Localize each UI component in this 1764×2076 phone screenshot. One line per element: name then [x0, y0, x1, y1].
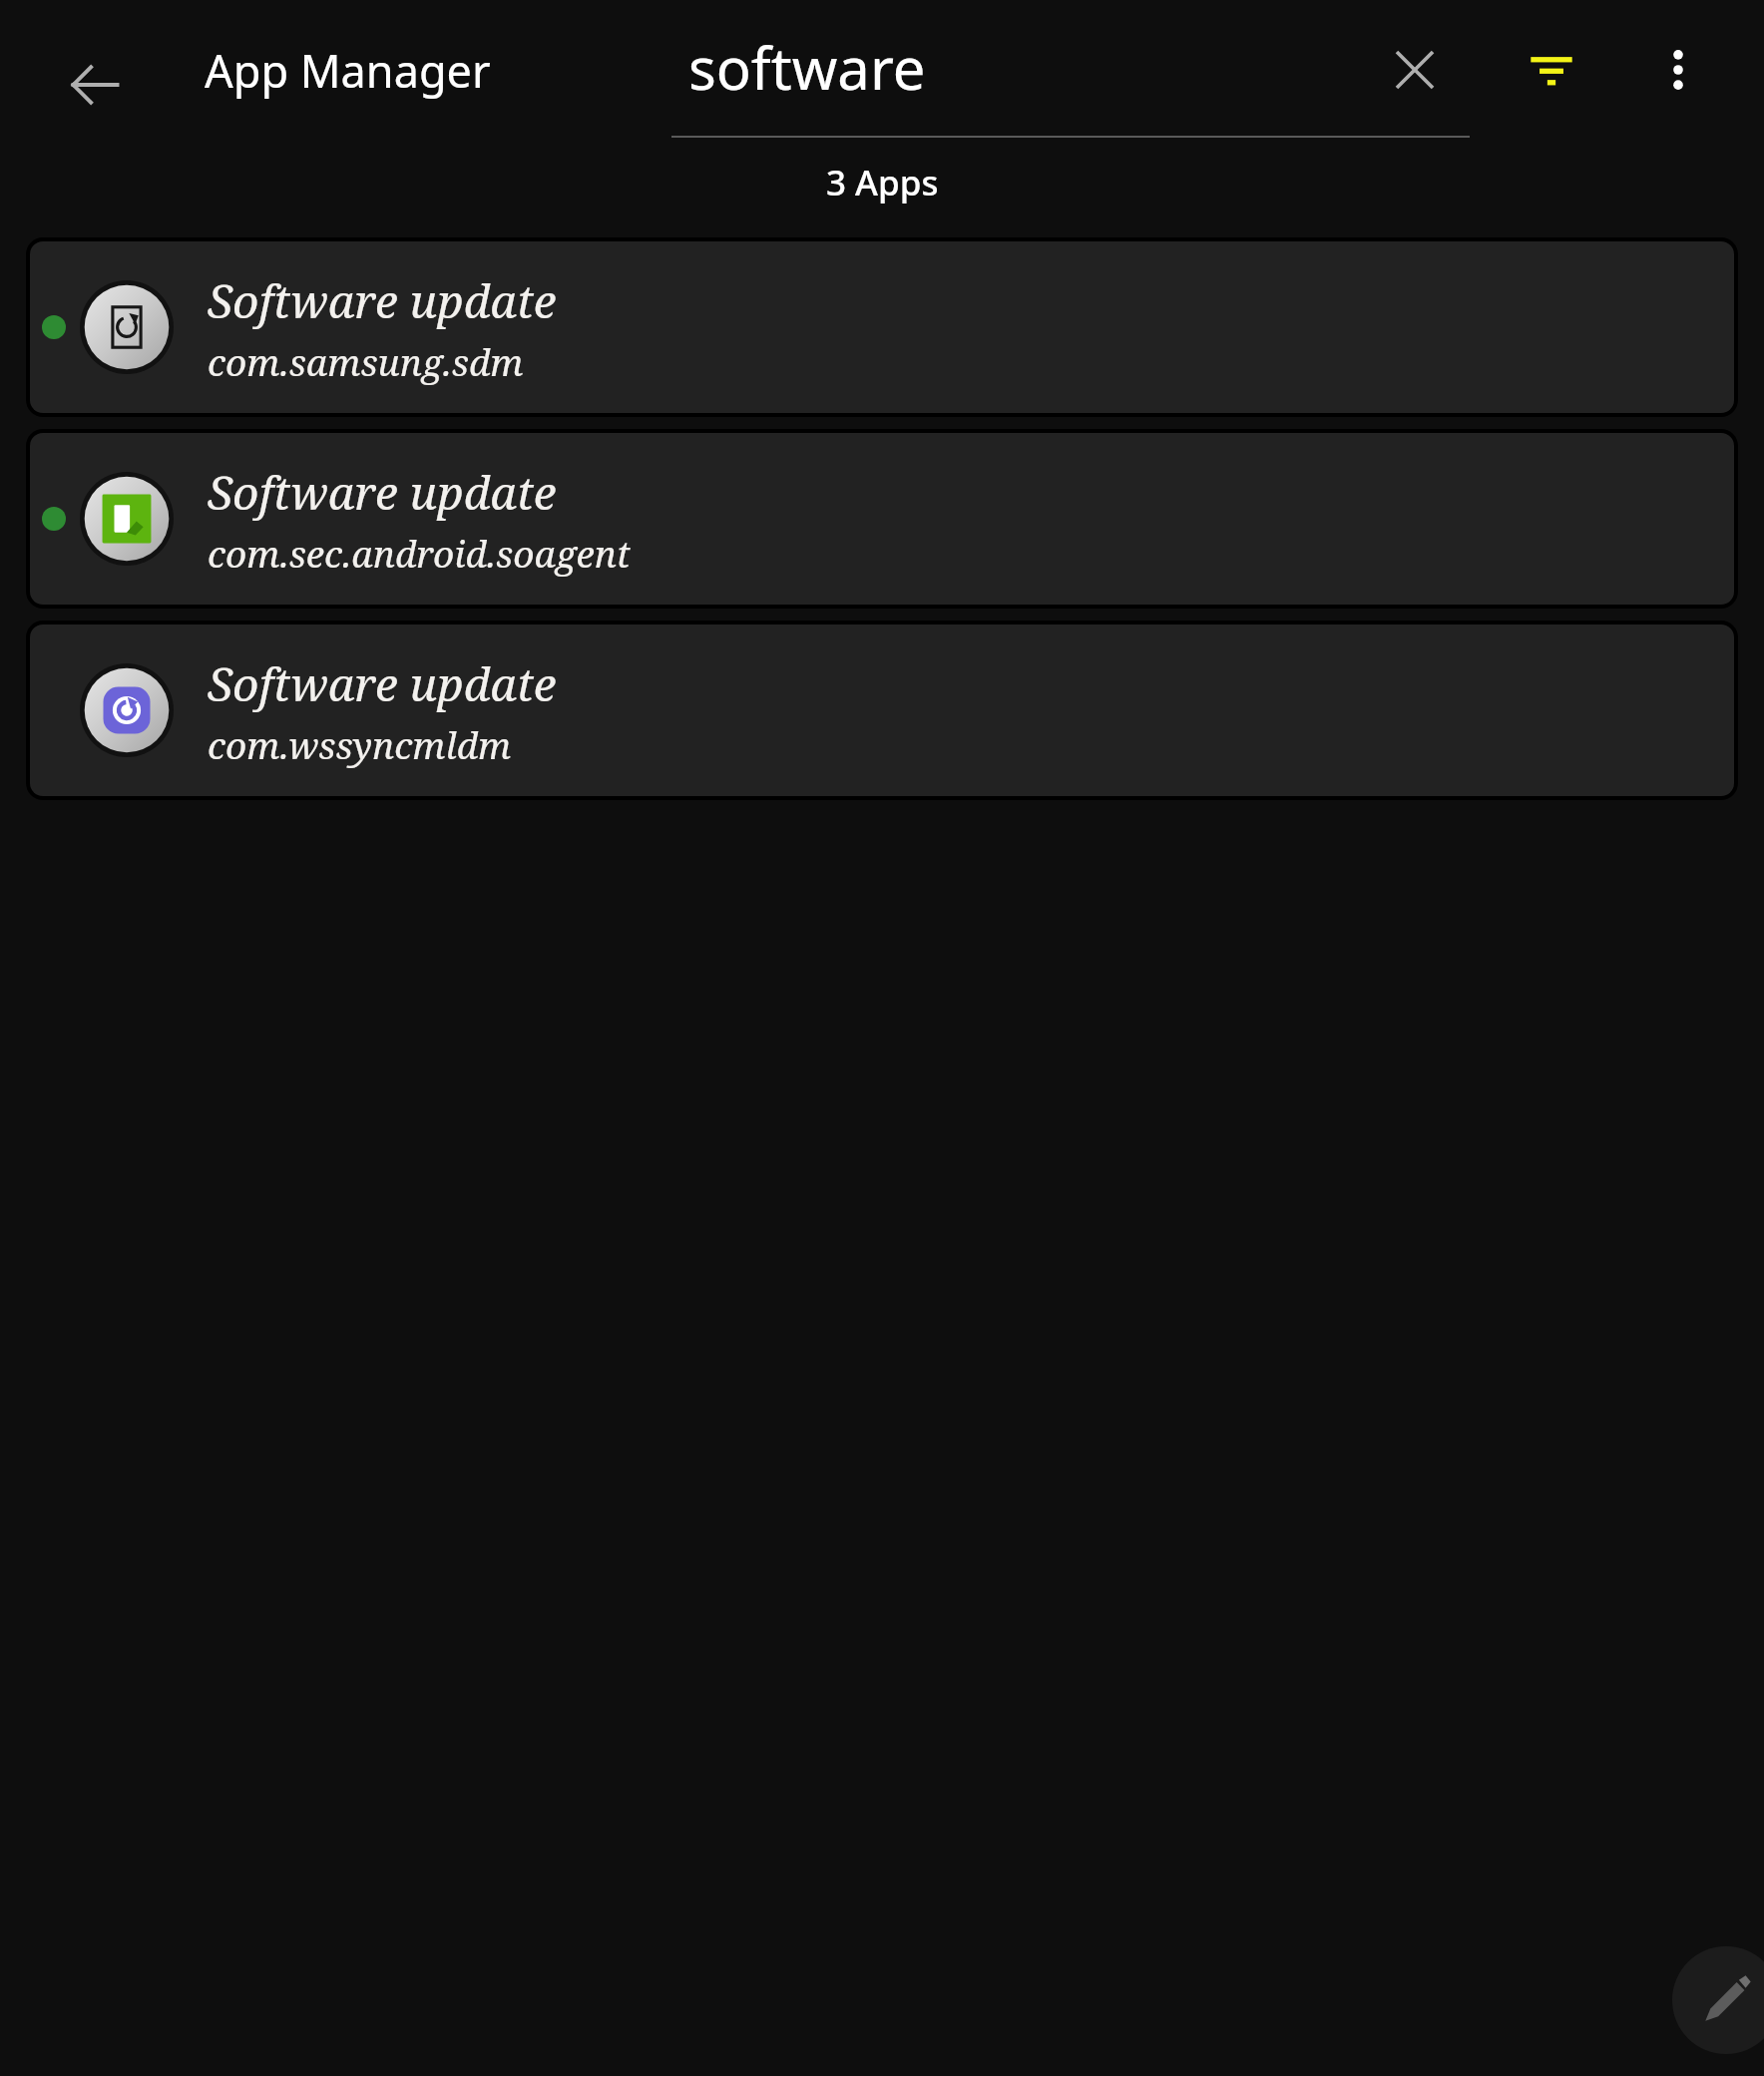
staticText: Software update — [208, 461, 557, 524]
staticText: com.wssyncmldm — [208, 719, 512, 769]
button[interactable]: Back — [52, 42, 138, 128]
staticText: com.sec.android.soagent — [208, 528, 631, 578]
button[interactable]: Filter — [1512, 30, 1591, 110]
button[interactable]: Software update — [30, 624, 1734, 796]
staticText: software — [688, 28, 926, 107]
button[interactable]: Edit — [1672, 1946, 1764, 2054]
staticText: Software update — [208, 269, 557, 332]
button[interactable]: More options — [1638, 30, 1718, 110]
button[interactable]: Clear search — [1375, 30, 1455, 110]
staticText: App Manager — [205, 40, 491, 101]
staticText: Software update — [208, 652, 557, 715]
staticText: com.samsung.sdm — [208, 336, 524, 386]
button[interactable]: Software update — [30, 433, 1734, 605]
staticText: 3 Apps — [826, 159, 939, 207]
button[interactable]: Software update — [30, 241, 1734, 413]
